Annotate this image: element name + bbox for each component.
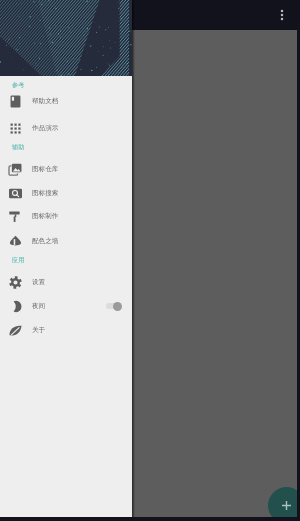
button[interactable]: More options — [271, 4, 293, 26]
staticText: 图标搜索 — [32, 189, 59, 197]
staticText: 配色之墙 — [32, 237, 59, 245]
staticText: 帮助文档 — [32, 97, 59, 105]
button[interactable]: 图标搜索 — [0, 181, 132, 205]
staticText: 夜间 — [32, 302, 46, 310]
staticText: 关于 — [32, 326, 46, 334]
button[interactable]: 夜间 — [0, 294, 132, 318]
button[interactable]: 图标仓库 — [0, 157, 132, 181]
staticText: 作品演示 — [32, 124, 59, 132]
staticText: 参考 — [12, 81, 25, 89]
button[interactable]: 帮助文档 — [0, 89, 132, 113]
staticText: 辅助 — [12, 143, 25, 151]
button[interactable]: 作品演示 — [0, 116, 132, 140]
button[interactable]: Add — [268, 487, 300, 521]
button[interactable]: 关于 — [0, 318, 132, 342]
button[interactable]: 设置 — [0, 270, 132, 294]
staticText: 设置 — [32, 278, 46, 286]
staticText: 图标仓库 — [32, 165, 59, 173]
button[interactable]: 图标制作 — [0, 204, 132, 228]
staticText: 图标制作 — [32, 212, 59, 220]
staticText: 应用 — [12, 256, 25, 264]
button[interactable]: 配色之墙 — [0, 229, 132, 253]
